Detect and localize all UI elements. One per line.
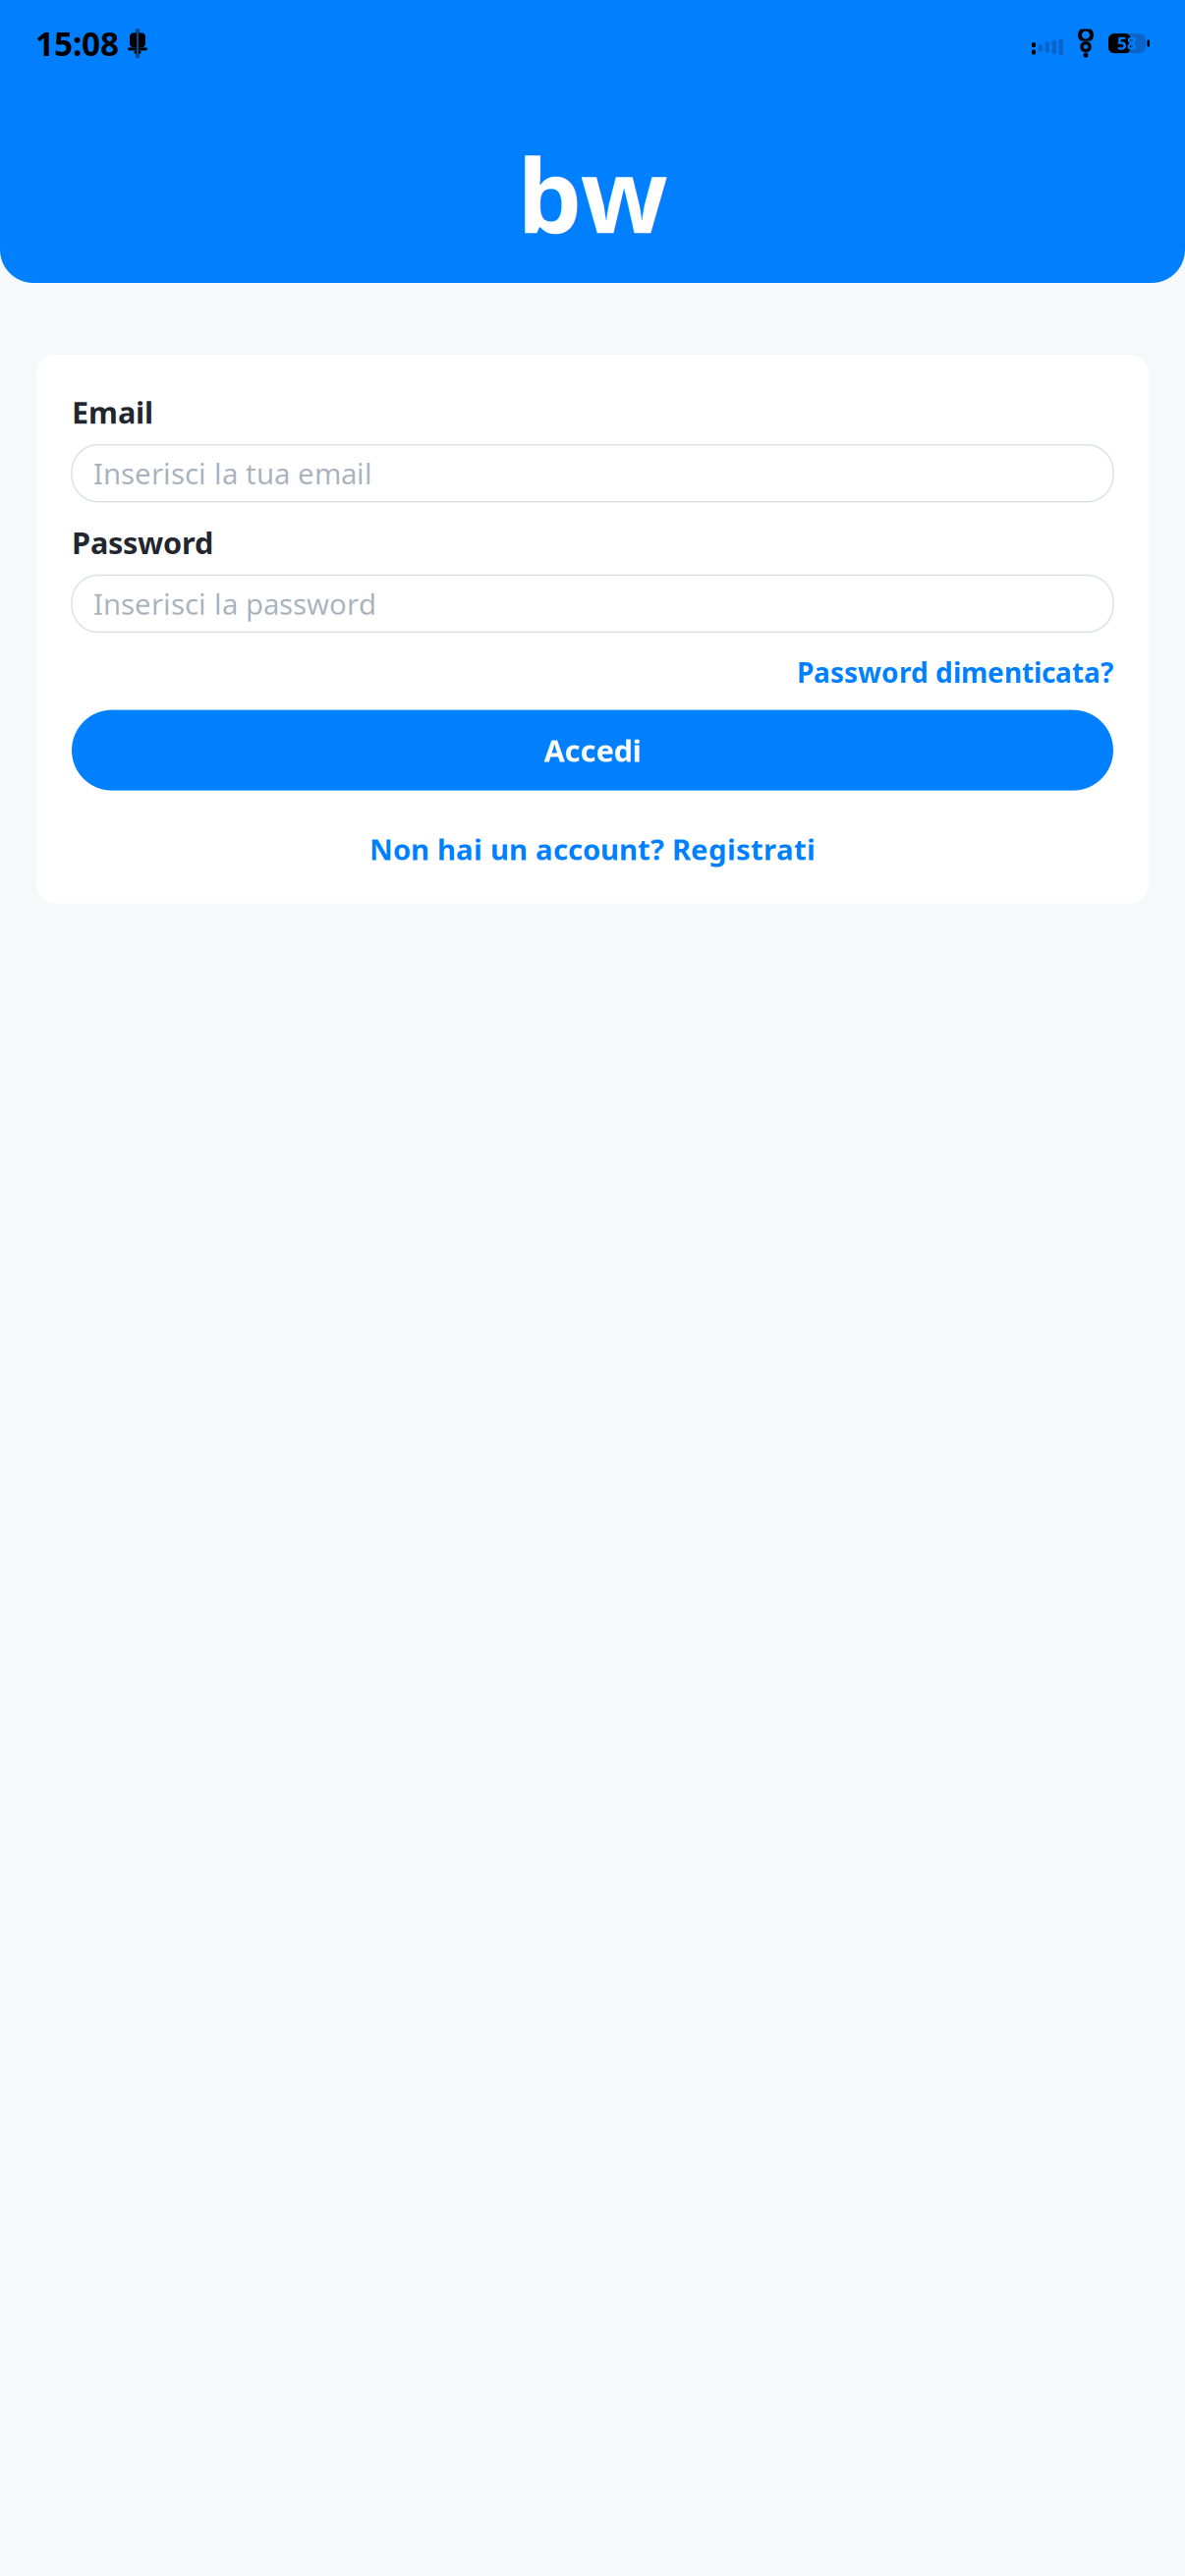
staticText: Non hai un account? Registrati xyxy=(369,830,816,868)
staticText: Password dimenticata? xyxy=(797,654,1113,690)
staticText: 58 xyxy=(1117,32,1137,55)
button[interactable]: Accedi xyxy=(72,710,1113,790)
staticText: Inserisci la password xyxy=(93,585,376,623)
button[interactable]: Password dimenticata? xyxy=(797,654,1113,690)
staticText: Password xyxy=(72,522,213,562)
button[interactable]: Non hai un account? Registrati xyxy=(72,830,1113,868)
staticText: 15:08 xyxy=(35,22,119,65)
staticText: bw xyxy=(517,126,668,261)
staticText: Accedi xyxy=(544,730,641,770)
staticText: Email xyxy=(72,392,153,432)
staticText: Inserisci la tua email xyxy=(93,454,372,492)
